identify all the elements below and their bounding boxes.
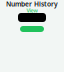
staticText: Number History: [6, 0, 58, 8]
button[interactable]: View: [26, 8, 37, 13]
staticText: View: [26, 7, 37, 14]
